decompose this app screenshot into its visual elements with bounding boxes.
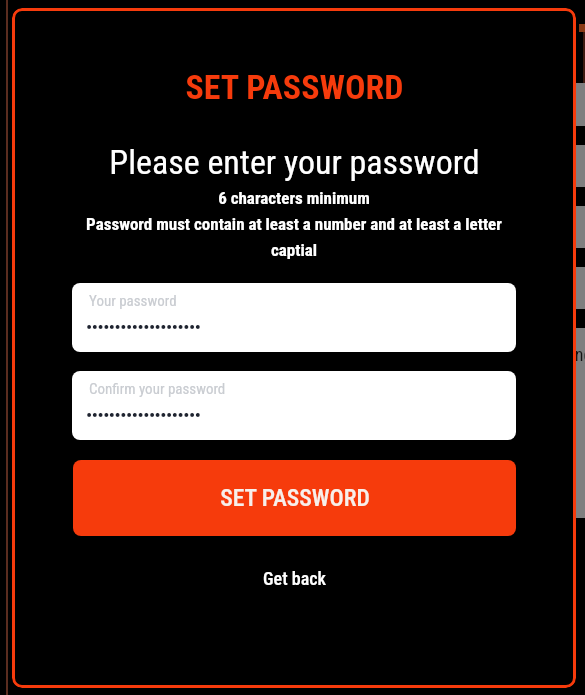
staticText: •••••••••••••••••••• (86, 405, 201, 425)
button[interactable]: Get back (253, 564, 336, 593)
button[interactable]: Confirm your password (72, 371, 516, 440)
button[interactable]: Your password (72, 283, 516, 352)
staticText: SET PASSWORD (185, 67, 404, 107)
staticText: 6 characters minimum (218, 188, 370, 208)
staticText: SET PASSWORD (220, 484, 370, 512)
button[interactable]: SET PASSWORD (73, 460, 516, 536)
staticText: Get back (263, 568, 326, 589)
staticText: •••••••••••••••••••• (86, 317, 201, 337)
staticText: Please enter your password (109, 142, 480, 182)
staticText: Matching (526, 344, 585, 365)
staticText: Confirm your password (89, 380, 226, 398)
staticText: Password must contain at least a number … (79, 214, 509, 260)
staticText: Your password (89, 292, 177, 310)
